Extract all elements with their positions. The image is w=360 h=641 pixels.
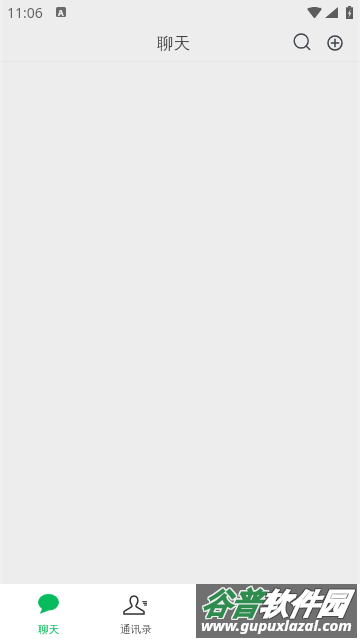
button[interactable]: 聊天: [5, 584, 92, 641]
staticText: 谷普: [200, 586, 258, 623]
staticText: 谷普: [201, 587, 259, 624]
staticText: 软件园: [260, 586, 347, 623]
button[interactable]: Search: [288, 29, 316, 57]
staticText: 软件园: [259, 587, 346, 624]
staticText: 软件园: [258, 586, 345, 623]
staticText: 软件园: [260, 587, 347, 624]
staticText: 聊天: [38, 623, 59, 636]
staticText: 软件园: [258, 587, 345, 624]
staticText: 谷普: [200, 585, 258, 622]
staticText: www.gupuxlazal.com: [201, 615, 352, 635]
staticText: 谷普: [202, 587, 260, 624]
staticText: A: [58, 7, 64, 17]
staticText: 软件园: [259, 586, 346, 623]
staticText: 谷普: [202, 586, 260, 623]
staticText: 通讯录: [120, 623, 152, 636]
staticText: 我: [306, 623, 317, 636]
button[interactable]: Add: [321, 29, 349, 57]
staticText: 谷普: [200, 587, 258, 624]
staticText: 软件园: [258, 585, 345, 622]
staticText: 谷普: [201, 586, 259, 623]
staticText: 11:06: [7, 3, 43, 22]
button[interactable]: 我: [267, 584, 355, 641]
staticText: 软件园: [259, 585, 346, 622]
staticText: 聊天: [157, 33, 190, 54]
staticText: 谷普: [202, 585, 260, 622]
button[interactable]: 发现: [179, 584, 267, 641]
staticText: 软件园: [260, 585, 347, 622]
staticText: 发现: [213, 623, 234, 636]
staticText: 谷普: [201, 585, 259, 622]
button[interactable]: 通讯录: [92, 584, 179, 641]
